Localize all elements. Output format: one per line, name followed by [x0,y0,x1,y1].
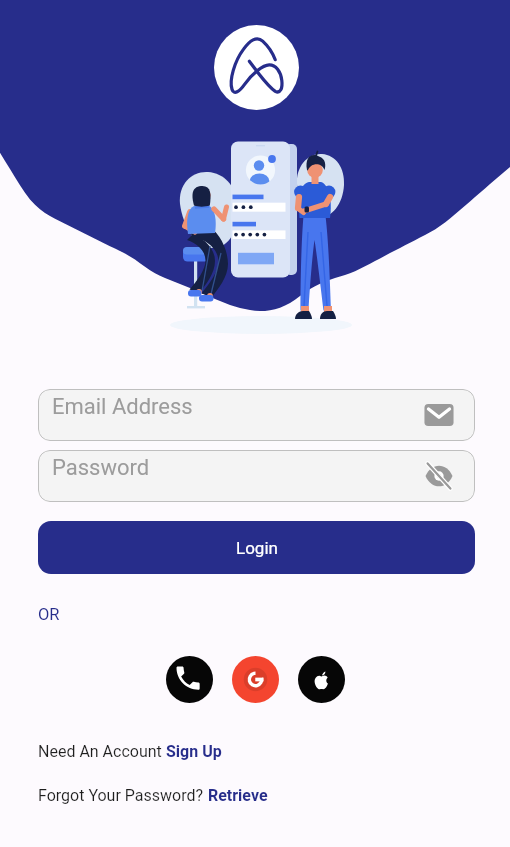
staticText: Need An Account [38,742,166,761]
staticText: Email Address [52,394,193,420]
staticText: Password [52,455,150,481]
button[interactable]: Sign in with Google [232,656,279,703]
button[interactable]: Login [38,521,475,574]
button[interactable]: Sign in with phone [166,656,213,703]
staticText: Retrieve [208,786,268,805]
other: App logo [214,25,299,110]
button[interactable]: Email Address [38,389,475,441]
staticText: Sign Up [166,742,222,761]
button[interactable]: Sign in with Apple [298,656,345,703]
button[interactable]: Password [38,450,475,502]
staticText: Login [236,538,278,558]
staticText: OR [38,605,60,624]
button[interactable]: Need An Account [38,742,222,761]
staticText: Forgot Your Password? [38,786,208,805]
button[interactable]: Forgot Your Password? [38,786,268,805]
